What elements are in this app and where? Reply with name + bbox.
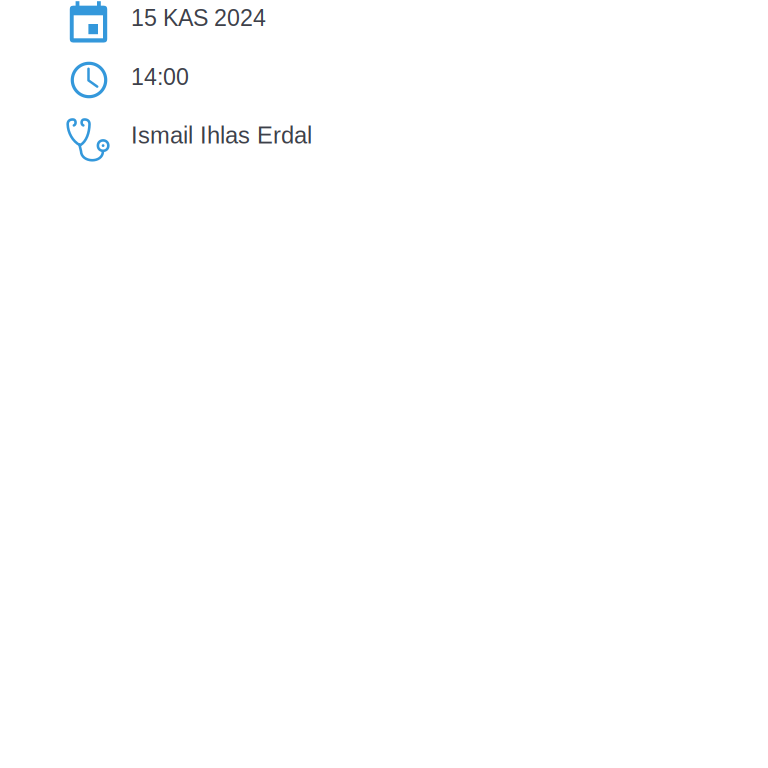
button[interactable]: Appointment time, 14:00 (64, 59, 324, 101)
button[interactable]: Doctor, Ismail Ihlas Erdal (64, 114, 324, 164)
staticText: 15 KAS 2024 (131, 5, 266, 31)
staticText: Ismail Ihlas Erdal (131, 122, 312, 148)
staticText: 14:00 (131, 64, 189, 90)
button[interactable]: Appointment date, 15 KAS 2024 (64, 0, 324, 46)
